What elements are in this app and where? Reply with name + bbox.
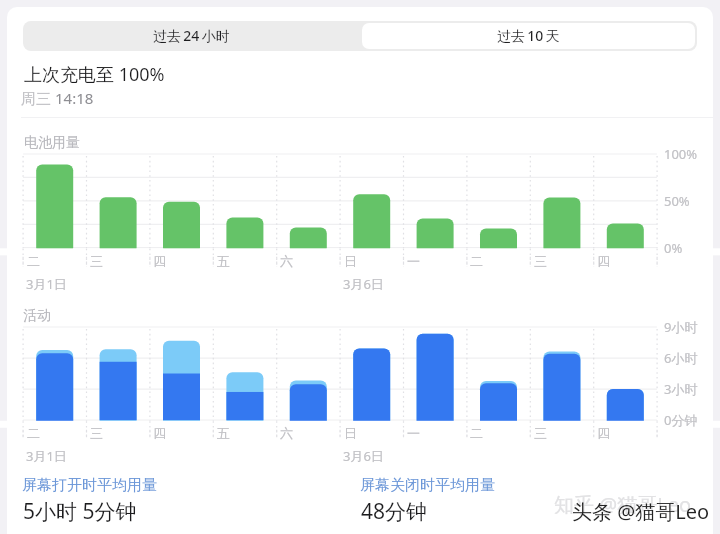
staticText: 3小时 bbox=[664, 380, 698, 398]
staticText: 六 bbox=[280, 253, 293, 269]
staticText: 48分钟 bbox=[361, 497, 428, 526]
staticText: 四 bbox=[153, 425, 166, 441]
staticText: 二 bbox=[27, 253, 40, 269]
staticText: 3月1日 bbox=[26, 447, 67, 465]
staticText: 屏幕打开时平均用量 bbox=[22, 476, 157, 495]
staticText: 0% bbox=[664, 239, 683, 257]
staticText: 电池用量 bbox=[24, 134, 80, 152]
staticText: 9小时 bbox=[664, 318, 698, 336]
staticText: 50% bbox=[664, 192, 690, 210]
staticText: 三 bbox=[90, 425, 103, 441]
staticText: 四 bbox=[597, 425, 610, 441]
staticText: 活动 bbox=[23, 307, 51, 325]
staticText: 6小时 bbox=[664, 349, 698, 367]
button[interactable]: 屏幕关闭时平均用量 bbox=[360, 476, 495, 495]
button[interactable]: 屏幕打开时平均用量 bbox=[22, 476, 157, 495]
staticText: 四 bbox=[153, 253, 166, 269]
staticText: 五 bbox=[217, 253, 230, 269]
staticText: 三 bbox=[90, 253, 103, 269]
staticText: 三 bbox=[534, 425, 547, 441]
staticText: 14:18 bbox=[55, 88, 94, 108]
staticText: 日 bbox=[344, 253, 357, 269]
staticText: 二 bbox=[27, 425, 40, 441]
staticText: 3月6日 bbox=[343, 275, 384, 293]
staticText: 一 bbox=[407, 425, 420, 441]
staticText: 六 bbox=[280, 425, 293, 441]
staticText: 100% bbox=[664, 145, 698, 163]
staticText: 0分钟 bbox=[664, 411, 698, 429]
staticText: 五 bbox=[217, 425, 230, 441]
staticText: 一 bbox=[407, 253, 420, 269]
staticText: 四 bbox=[597, 253, 610, 269]
staticText: 3月1日 bbox=[26, 275, 67, 293]
staticText: 二 bbox=[470, 253, 483, 269]
staticText: 过去 10 天 bbox=[497, 26, 560, 45]
staticText: 屏幕关闭时平均用量 bbox=[360, 476, 495, 495]
button[interactable]: 过去 24 小时 bbox=[23, 21, 360, 51]
staticText: 日 bbox=[344, 425, 357, 441]
staticText: 3月6日 bbox=[343, 447, 384, 465]
staticText: 周三 bbox=[21, 88, 55, 108]
button[interactable]: 过去 10 天 bbox=[362, 23, 695, 49]
staticText: 过去 24 小时 bbox=[153, 26, 230, 45]
staticText: 三 bbox=[534, 253, 547, 269]
staticText: 头条 @猫哥Leo bbox=[572, 498, 710, 525]
staticText: 5小时 5分钟 bbox=[23, 497, 137, 526]
staticText: 上次充电至 100% bbox=[24, 62, 165, 87]
staticText: 二 bbox=[470, 425, 483, 441]
staticText: 知乎 @猫哥Leo bbox=[554, 491, 692, 518]
